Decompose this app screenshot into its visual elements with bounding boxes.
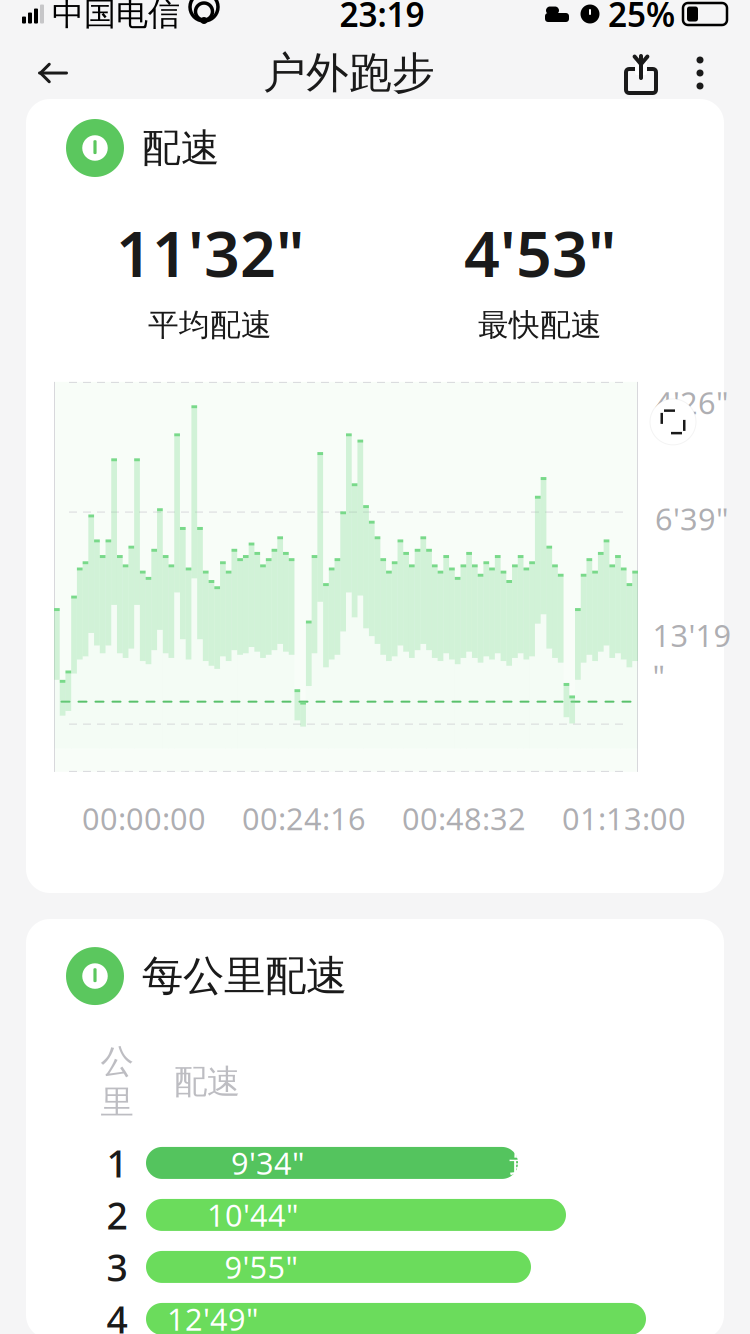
staticText: 13'19" (652, 615, 731, 696)
staticText: 平均配速 (148, 306, 272, 344)
button[interactable]: 3 (88, 1241, 708, 1293)
staticText: 1 (106, 1138, 127, 1188)
staticText: 23:19 (339, 0, 424, 36)
button[interactable]: 1 (88, 1137, 708, 1189)
staticText: 4'26" (655, 382, 729, 423)
staticText: 最快 (509, 1144, 571, 1182)
staticText: 9'34" (231, 1143, 305, 1183)
staticText: 00:48:32 (402, 798, 526, 839)
staticText: 4'53" (464, 211, 616, 294)
staticText: 配速 (174, 1061, 240, 1102)
staticText: 中国电信 (52, 0, 180, 34)
staticText: 公里 (100, 1041, 133, 1123)
staticText: 11'32" (116, 211, 304, 294)
staticText: 3 (106, 1242, 127, 1292)
staticText: 25% (608, 0, 675, 36)
staticText: 户外跑步 (263, 47, 435, 99)
staticText: 6'39" (655, 498, 729, 539)
button[interactable]: 4 (88, 1293, 708, 1334)
staticText: 10'44" (207, 1195, 299, 1235)
staticText: 12'49" (167, 1299, 259, 1334)
staticText: 01:13:00 (562, 798, 686, 839)
staticText: 00:00:00 (82, 798, 206, 839)
button[interactable]: 2 (88, 1189, 708, 1241)
staticText: 每公里配速 (142, 951, 347, 1001)
button[interactable]: Share (610, 41, 672, 105)
staticText: 9'55" (224, 1247, 298, 1287)
staticText: 配速 (142, 124, 220, 172)
button[interactable]: Back (18, 41, 88, 105)
staticText: 最快配速 (478, 306, 602, 344)
button[interactable]: Expand chart (645, 394, 701, 450)
staticText: 4 (106, 1294, 127, 1334)
button[interactable]: More options (672, 41, 728, 105)
staticText: 2 (106, 1190, 127, 1240)
staticText: 00:24:16 (242, 798, 366, 839)
